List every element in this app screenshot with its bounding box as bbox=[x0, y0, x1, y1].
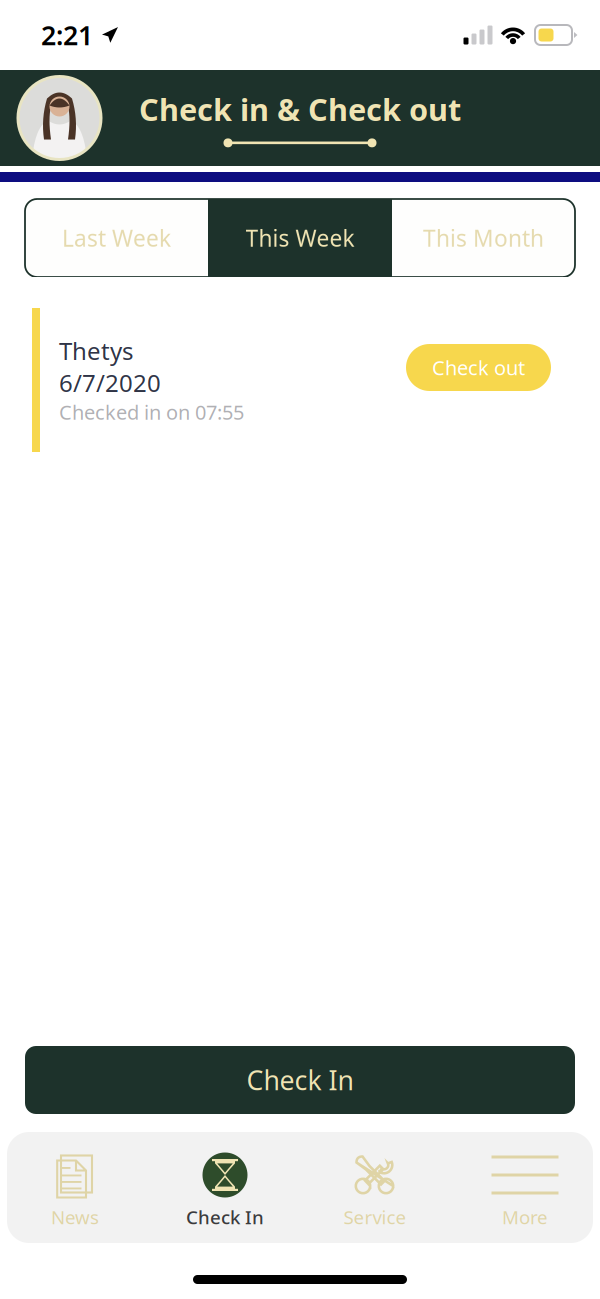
staticText: Check out bbox=[432, 354, 525, 381]
staticText: 6/7/2020 bbox=[59, 367, 161, 399]
staticText: More bbox=[502, 1205, 548, 1229]
staticText: This Month bbox=[423, 223, 544, 253]
button[interactable]: Check In bbox=[25, 1046, 575, 1114]
button[interactable]: This Month bbox=[392, 199, 575, 277]
staticText: Check In bbox=[186, 1205, 264, 1229]
staticText: News bbox=[51, 1205, 99, 1229]
button[interactable]: Check out bbox=[406, 344, 551, 416]
button[interactable]: Check In bbox=[150, 1132, 300, 1243]
staticText: Last Week bbox=[62, 223, 171, 253]
button[interactable]: News bbox=[0, 1132, 150, 1243]
button[interactable]: This Week bbox=[208, 199, 392, 277]
staticText: This Week bbox=[245, 223, 354, 253]
button[interactable]: Service bbox=[300, 1132, 450, 1243]
staticText: 2:21 bbox=[41, 17, 93, 53]
staticText: Service bbox=[343, 1205, 406, 1229]
staticText: Check in & Check out bbox=[139, 89, 461, 129]
staticText: Check In bbox=[246, 1062, 353, 1098]
staticText: Thetys bbox=[59, 335, 133, 367]
button[interactable]: Last Week bbox=[25, 199, 208, 277]
staticText: Checked in on 07:55 bbox=[59, 399, 244, 425]
button[interactable]: More bbox=[450, 1132, 600, 1243]
button[interactable]: Profile bbox=[0, 76, 101, 159]
